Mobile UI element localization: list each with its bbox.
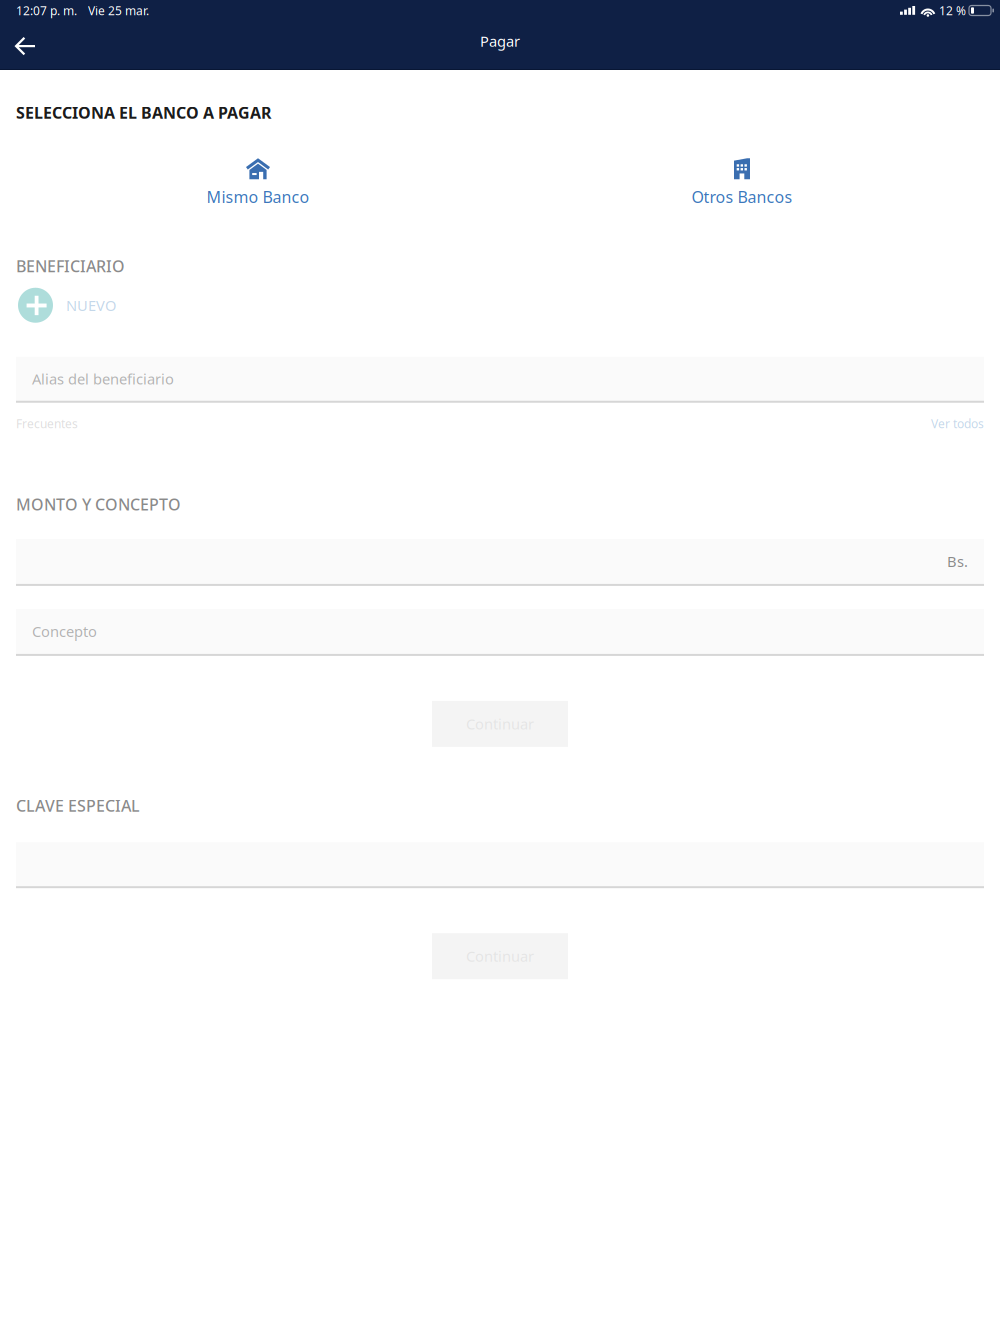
staticText: BENEFICIARIO — [16, 255, 125, 277]
staticText: Alias del beneficiario — [32, 369, 174, 388]
staticText: Continuar — [466, 946, 534, 966]
staticText: Pagar — [480, 31, 520, 51]
button[interactable]: Mismo Banco — [16, 158, 500, 207]
button[interactable]: Concepto — [16, 609, 984, 656]
staticText: NUEVO — [66, 295, 116, 315]
button[interactable]: Ver todos — [931, 416, 984, 432]
staticText: 12:07 p. m. — [16, 2, 77, 18]
staticText: MONTO Y CONCEPTO — [16, 494, 181, 515]
button[interactable]: Clave especial — [16, 842, 984, 888]
button[interactable]: Back — [0, 21, 54, 67]
button[interactable]: Alias del beneficiario — [16, 357, 984, 403]
staticText: 12 % — [939, 2, 966, 18]
staticText: CLAVE ESPECIAL — [16, 795, 140, 816]
staticText: Continuar — [466, 714, 534, 734]
staticText: Ver todos — [931, 416, 984, 432]
staticText: SELECCIONA EL BANCO A PAGAR — [16, 102, 271, 123]
button[interactable]: Monto — [16, 539, 984, 586]
button[interactable]: NUEVO — [0, 288, 1000, 323]
staticText: Vie 25 mar. — [88, 2, 149, 18]
staticText: Bs. — [947, 552, 968, 571]
staticText: Mismo Banco — [206, 186, 309, 207]
staticText: Otros Bancos — [691, 186, 792, 207]
staticText: Concepto — [32, 622, 97, 641]
staticText: Frecuentes — [16, 416, 78, 432]
button[interactable]: Otros Bancos — [500, 158, 984, 207]
